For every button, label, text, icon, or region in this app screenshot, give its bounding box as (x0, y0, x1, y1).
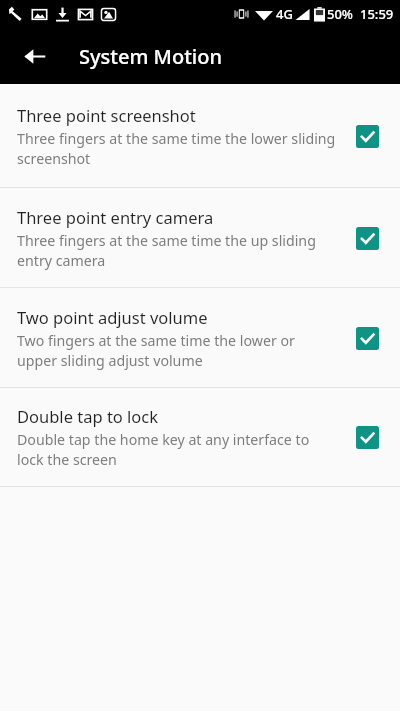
button[interactable]: Toggle setting (347, 417, 387, 457)
button[interactable]: Back (10, 32, 58, 80)
staticText: Three fingers at the same time the up sl… (17, 231, 337, 270)
staticText: Three point entry camera (17, 206, 214, 228)
button[interactable]: Two point adjust volume (0, 288, 400, 387)
button[interactable]: Toggle setting (347, 116, 387, 156)
button[interactable]: Three point screenshot (0, 84, 400, 187)
staticText: Three fingers at the same time the lower… (17, 129, 337, 168)
staticText: System Motion (79, 43, 222, 70)
button[interactable]: Double tap to lock (0, 388, 400, 486)
button[interactable]: Toggle setting (347, 318, 387, 358)
button[interactable]: Three point entry camera (0, 188, 400, 287)
staticText: 50% (327, 5, 353, 23)
button[interactable]: Toggle setting (347, 218, 387, 258)
staticText: Two point adjust volume (17, 306, 208, 328)
staticText: Double tap to lock (17, 405, 159, 427)
staticText: 4G (276, 5, 293, 23)
staticText: Double tap the home key at any interface… (17, 430, 337, 469)
staticText: Three point screenshot (17, 104, 196, 126)
staticText: 15:59 (360, 5, 394, 23)
staticText: Two fingers at the same time the lower o… (17, 331, 337, 370)
